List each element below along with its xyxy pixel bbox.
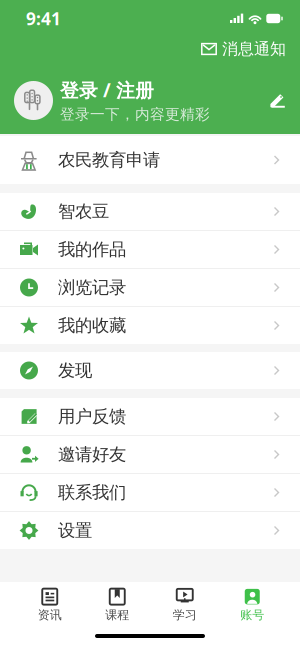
button[interactable]: 用户反馈 <box>0 398 300 435</box>
staticText: 资讯 <box>38 608 62 622</box>
staticText: 我的作品 <box>58 239 126 260</box>
button[interactable]: 消息通知 <box>201 41 286 57</box>
button[interactable]: 邀请好友 <box>0 436 300 473</box>
button[interactable]: 我的作品 <box>0 231 300 268</box>
staticText: 设置 <box>58 520 92 541</box>
staticText: 联系我们 <box>58 482 126 503</box>
staticText: 登录 / 注册 <box>60 78 154 102</box>
button[interactable]: 课程 <box>83 588 151 623</box>
button[interactable]: 智农豆 <box>0 193 300 230</box>
staticText: 发现 <box>58 360 92 381</box>
button[interactable]: 学习 <box>151 588 218 623</box>
button[interactable]: 发现 <box>0 352 300 389</box>
staticText: 学习 <box>173 608 197 622</box>
button[interactable]: 账号 <box>218 588 286 623</box>
staticText: 我的收藏 <box>58 315 126 336</box>
staticText: 邀请好友 <box>58 444 126 465</box>
staticText: 登录一下，内容更精彩 <box>60 105 210 123</box>
staticText: 9:41 <box>26 7 61 30</box>
staticText: 课程 <box>105 608 129 622</box>
staticText: 消息通知 <box>222 39 286 59</box>
staticText: 农民教育申请 <box>58 149 160 171</box>
button[interactable]: 农民教育申请 <box>0 136 300 184</box>
button[interactable]: 我的收藏 <box>0 307 300 344</box>
button[interactable]: 设置 <box>0 512 300 549</box>
button[interactable]: 资讯 <box>16 588 83 623</box>
staticText: 智农豆 <box>58 201 109 222</box>
button[interactable]: 登录 / 注册 <box>0 81 300 120</box>
button[interactable]: 浏览记录 <box>0 269 300 306</box>
staticText: 账号 <box>240 608 264 622</box>
button[interactable]: 联系我们 <box>0 474 300 511</box>
staticText: 用户反馈 <box>58 406 126 427</box>
staticText: 浏览记录 <box>58 277 126 298</box>
